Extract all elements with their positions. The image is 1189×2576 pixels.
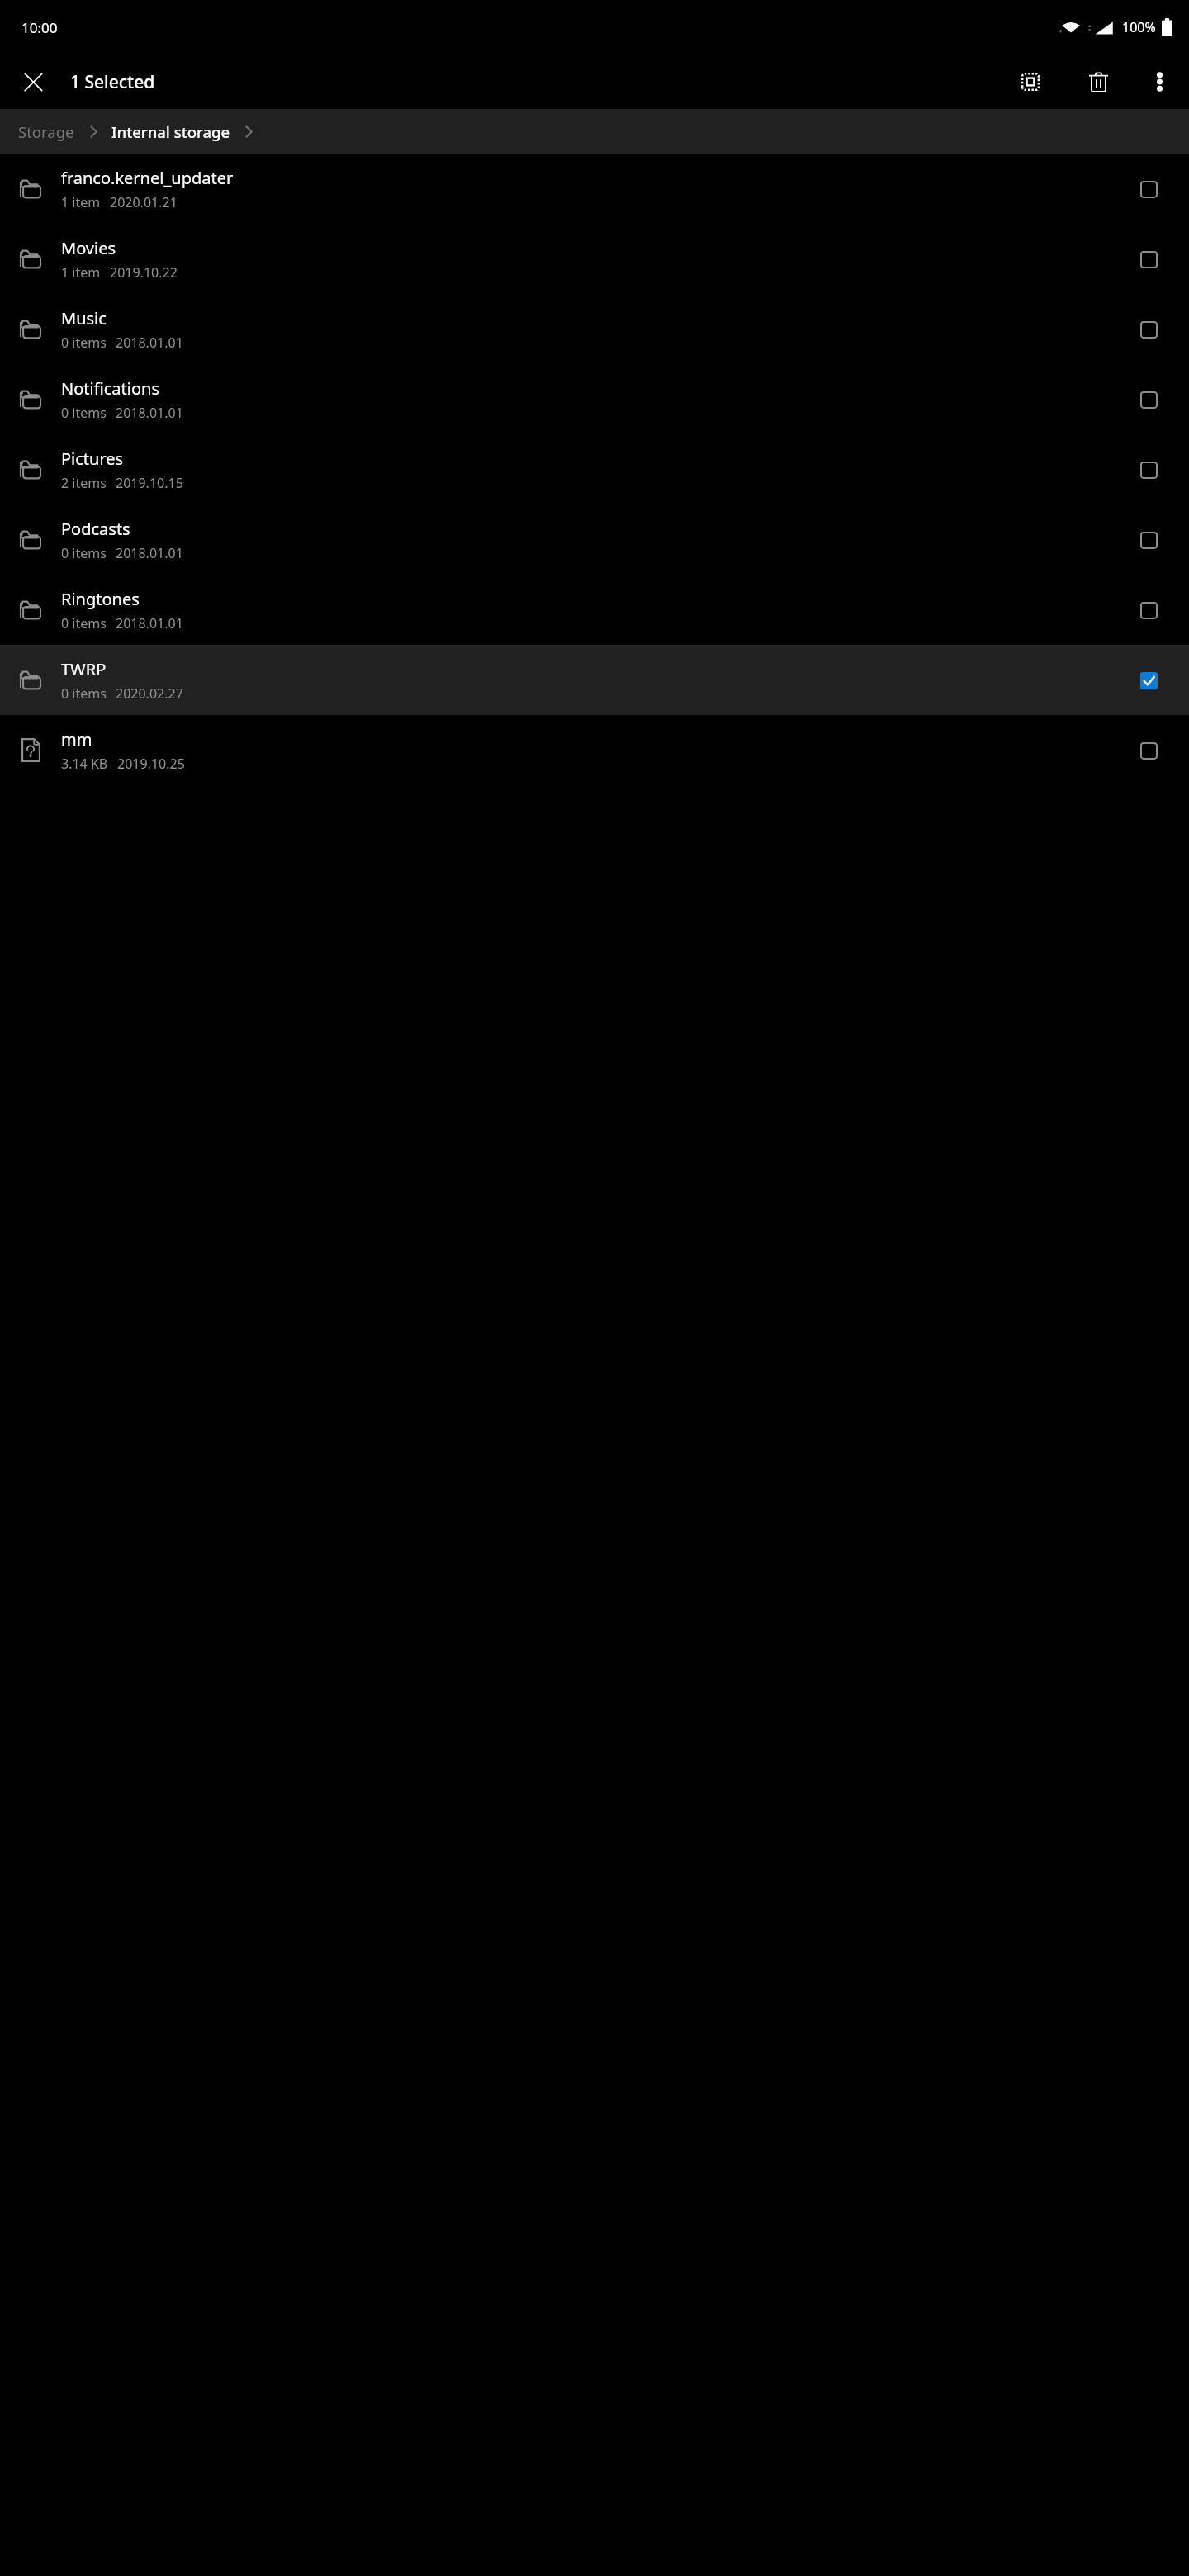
- button[interactable]: Select Pictures: [1125, 447, 1172, 493]
- staticText: 2019.10.25: [117, 755, 185, 773]
- button[interactable]: Close selection: [10, 59, 56, 105]
- button[interactable]: Select mm: [1125, 727, 1172, 774]
- staticText: 2018.01.01: [116, 544, 183, 562]
- staticText: 0 items: [61, 614, 107, 632]
- staticText: 10:00: [21, 18, 58, 37]
- button[interactable]: franco.kernel_updater: [0, 154, 1189, 224]
- staticText: 3.14 KB: [61, 755, 108, 773]
- staticText: TWRP: [61, 658, 107, 680]
- staticText: 2018.01.01: [116, 404, 183, 422]
- button[interactable]: More options: [1136, 59, 1182, 105]
- staticText: 0 items: [61, 404, 107, 422]
- button[interactable]: Select Movies: [1125, 236, 1172, 282]
- staticText: 2020.02.27: [116, 684, 183, 703]
- button[interactable]: Select Podcasts: [1125, 517, 1172, 563]
- staticText: 0 items: [61, 544, 107, 562]
- button[interactable]: Notifications: [0, 364, 1189, 434]
- button[interactable]: Select Music: [1125, 306, 1172, 353]
- staticText: 2019.10.22: [110, 263, 178, 282]
- staticText: Notifications: [61, 377, 159, 400]
- button[interactable]: TWRP: [0, 645, 1189, 715]
- staticText: franco.kernel_updater: [61, 167, 234, 189]
- staticText: Music: [61, 307, 107, 329]
- button[interactable]: Storage: [18, 118, 74, 145]
- staticText: 1 item: [61, 263, 101, 282]
- button[interactable]: Select Ringtones: [1125, 587, 1172, 633]
- button[interactable]: Select Notifications: [1125, 376, 1172, 423]
- button[interactable]: Podcasts: [0, 504, 1189, 575]
- staticText: Storage: [18, 121, 74, 142]
- staticText: Ringtones: [61, 588, 140, 610]
- staticText: 1 item: [61, 193, 101, 211]
- button[interactable]: Select all: [1007, 59, 1054, 105]
- button[interactable]: Movies: [0, 224, 1189, 294]
- button[interactable]: Pictures: [0, 434, 1189, 504]
- button[interactable]: Deselect TWRP: [1125, 657, 1172, 703]
- staticText: Movies: [61, 237, 116, 259]
- staticText: 2020.01.21: [110, 193, 178, 211]
- button[interactable]: Internal storage: [111, 118, 230, 145]
- staticText: 2018.01.01: [116, 334, 183, 352]
- staticText: 2019.10.15: [116, 474, 183, 492]
- staticText: 0 items: [61, 684, 107, 703]
- button[interactable]: Ringtones: [0, 575, 1189, 645]
- staticText: 2018.01.01: [116, 614, 183, 632]
- staticText: Podcasts: [61, 518, 130, 540]
- staticText: 2 items: [61, 474, 107, 492]
- staticText: Internal storage: [111, 121, 230, 142]
- staticText: 0 items: [61, 334, 107, 352]
- button[interactable]: mm: [0, 715, 1189, 785]
- button[interactable]: Music: [0, 294, 1189, 364]
- staticText: 100%: [1122, 18, 1156, 36]
- staticText: Pictures: [61, 447, 124, 470]
- staticText: mm: [61, 728, 92, 751]
- button[interactable]: Delete: [1075, 59, 1121, 105]
- button[interactable]: Select franco.kernel_updater: [1125, 166, 1172, 212]
- staticText: 1 Selected: [70, 70, 155, 94]
